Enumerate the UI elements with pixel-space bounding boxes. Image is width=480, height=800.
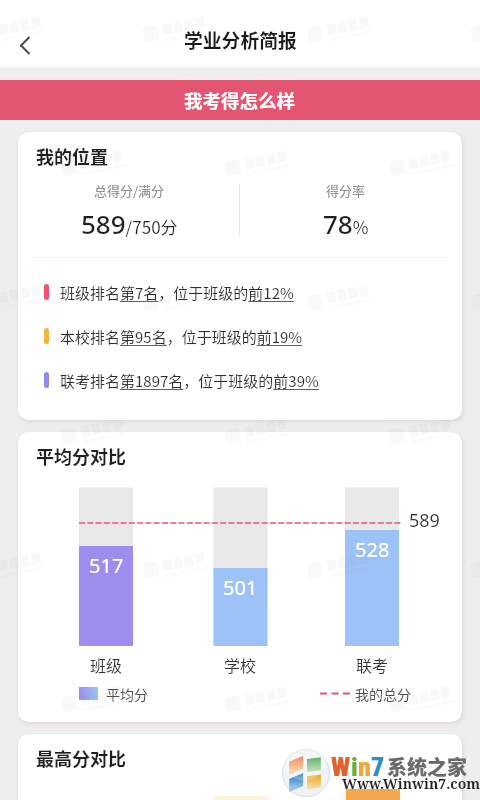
staticText: 学校 [224, 653, 257, 676]
staticText: 系统之家 [387, 752, 467, 781]
staticText: 得分率 [326, 181, 366, 200]
button[interactable]: 联考排名第1897名，位于班级的前39% [44, 370, 319, 390]
staticText: Www.Winwin7.com [342, 774, 480, 793]
staticText: W [331, 752, 351, 782]
staticText: 本校排名第95名，位于班级的前19% [60, 326, 303, 346]
button[interactable]: Back [2, 23, 46, 67]
staticText: 联考 [356, 653, 389, 676]
staticText: 我的位置 [36, 143, 108, 169]
staticText: 联考排名第1897名，位于班级的前39% [60, 370, 319, 390]
staticText: 最高分对比 [36, 745, 126, 771]
staticText: 平均分 [106, 684, 148, 704]
staticText: 我的总分 [355, 684, 411, 704]
staticText: 78% [323, 206, 369, 239]
staticText: 501 [223, 574, 258, 601]
staticText: 528 [355, 536, 390, 563]
staticText: 班级 [90, 653, 123, 676]
staticText: 学业分析简报 [184, 26, 297, 53]
staticText: 589 [409, 508, 440, 533]
staticText: i [351, 752, 358, 782]
staticText: 517 [89, 552, 124, 579]
staticText: 7 [371, 752, 385, 782]
staticText: 我考得怎么样 [184, 87, 296, 114]
staticText: 平均分对比 [36, 443, 126, 469]
button[interactable]: 班级排名第7名，位于班级的前12% [44, 282, 294, 302]
staticText: n [358, 752, 371, 782]
staticText: 589/750分 [81, 206, 178, 239]
staticText: 总得分/满分 [94, 181, 165, 200]
button[interactable]: 我考得怎么样 [0, 80, 480, 120]
button[interactable]: 本校排名第95名，位于班级的前19% [44, 326, 303, 346]
staticText: 班级排名第7名，位于班级的前12% [60, 282, 294, 302]
